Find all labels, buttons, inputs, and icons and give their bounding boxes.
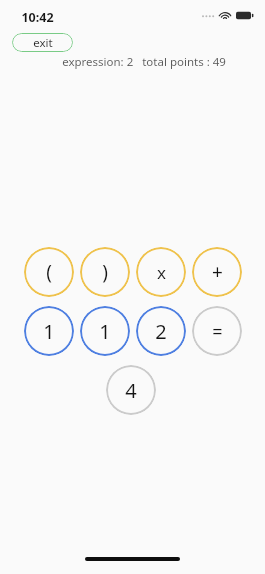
button[interactable]: two <box>136 306 186 356</box>
button[interactable]: open parenthesis <box>24 247 74 297</box>
button[interactable]: plus <box>192 247 242 297</box>
staticText: ( <box>46 259 52 285</box>
button[interactable]: four <box>106 365 156 415</box>
staticText: 10:42 <box>21 9 54 26</box>
staticText: 1 <box>99 318 111 345</box>
staticText: + <box>212 259 223 285</box>
staticText: 1 <box>43 318 55 345</box>
staticText: 2 <box>155 318 167 345</box>
button[interactable]: one <box>24 306 74 356</box>
button[interactable]: close parenthesis <box>80 247 130 297</box>
staticText: exit <box>33 35 53 51</box>
staticText: = <box>212 319 223 344</box>
staticText: 4 <box>125 377 137 404</box>
button[interactable]: multiply <box>136 247 186 297</box>
button[interactable]: equals <box>192 306 242 356</box>
button[interactable]: one <box>80 306 130 356</box>
staticText: expression: 2 total points : 49 <box>62 54 226 70</box>
staticText: ) <box>102 259 108 285</box>
button[interactable]: exit <box>12 33 73 52</box>
staticText: x <box>157 261 166 284</box>
